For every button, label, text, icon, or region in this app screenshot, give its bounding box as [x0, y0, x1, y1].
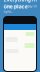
staticText: Chat, share, stay in sync. [3, 3, 36, 14]
staticText: Everything in one place [3, 0, 36, 10]
